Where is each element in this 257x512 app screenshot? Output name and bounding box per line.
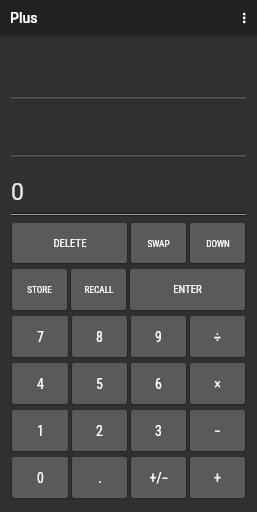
button[interactable]: . <box>72 457 127 498</box>
button[interactable]: More options <box>229 0 257 35</box>
button[interactable]: 5 <box>72 363 127 404</box>
button[interactable]: + <box>190 457 245 498</box>
button[interactable]: RECALL <box>71 269 126 310</box>
staticText: 0 <box>11 179 24 206</box>
staticText: SWAP <box>147 238 170 249</box>
staticText: + <box>214 470 221 486</box>
staticText: 2 <box>96 423 103 439</box>
staticText: DELETE <box>53 237 87 250</box>
button[interactable]: 9 <box>131 316 186 357</box>
staticText: 0 <box>37 470 44 486</box>
staticText: − <box>214 423 221 439</box>
button[interactable]: 0 <box>12 457 68 498</box>
staticText: +/− <box>149 470 169 486</box>
button[interactable]: 3 <box>131 410 186 451</box>
staticText: RECALL <box>84 284 114 295</box>
button[interactable]: 1 <box>12 410 68 451</box>
staticText: × <box>214 376 221 392</box>
button[interactable]: 8 <box>72 316 127 357</box>
staticText: 5 <box>96 376 103 392</box>
button[interactable]: − <box>190 410 245 451</box>
staticText: STORE <box>27 284 52 295</box>
button[interactable]: ÷ <box>190 316 245 357</box>
button[interactable]: +/− <box>131 457 186 498</box>
button[interactable]: DOWN <box>190 223 245 263</box>
staticText: . <box>98 470 102 486</box>
staticText: ENTER <box>173 283 202 296</box>
button[interactable]: 7 <box>12 316 68 357</box>
button[interactable]: × <box>190 363 245 404</box>
staticText: ÷ <box>214 329 221 345</box>
staticText: 3 <box>155 423 162 439</box>
staticText: 9 <box>155 329 162 345</box>
staticText: 6 <box>155 376 162 392</box>
staticText: Plus <box>10 10 38 26</box>
button[interactable]: ENTER <box>130 269 245 310</box>
staticText: DOWN <box>206 238 230 249</box>
button[interactable]: DELETE <box>12 223 127 263</box>
button[interactable]: 4 <box>12 363 68 404</box>
staticText: 8 <box>96 329 103 345</box>
staticText: 7 <box>37 329 44 345</box>
button[interactable]: STORE <box>12 269 67 310</box>
staticText: 4 <box>37 376 44 392</box>
button[interactable]: SWAP <box>131 223 186 263</box>
button[interactable]: 2 <box>72 410 127 451</box>
button[interactable]: 6 <box>131 363 186 404</box>
staticText: 1 <box>37 423 44 439</box>
